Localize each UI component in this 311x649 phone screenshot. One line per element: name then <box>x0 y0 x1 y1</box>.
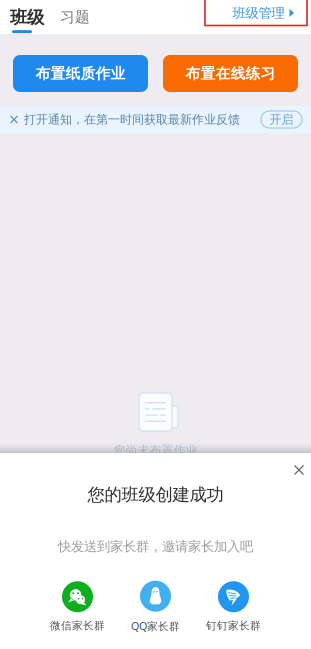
staticText: 打开通知，在第一时间获取最新作业反馈 <box>24 112 240 127</box>
staticText: 钉钉家长群 <box>206 619 261 632</box>
staticText: 班级管理 <box>232 5 284 21</box>
staticText: 快发送到家长群，邀请家长加入吧 <box>58 538 253 555</box>
button[interactable]: 开启 <box>261 111 302 128</box>
staticText: 微信家长群 <box>50 619 105 632</box>
button[interactable]: 班级 <box>0 0 44 34</box>
button[interactable]: 班级管理 <box>204 0 311 34</box>
button[interactable]: 布置在线练习 <box>163 55 298 92</box>
staticText: 您的班级创建成功 <box>87 484 223 505</box>
button[interactable]: 习题 <box>44 0 90 34</box>
button[interactable]: 钉钉家长群 <box>194 581 272 632</box>
staticText: 布置在线练习 <box>185 64 275 82</box>
button[interactable]: 布置纸质作业 <box>13 55 148 92</box>
button[interactable]: 微信家长群 <box>38 581 116 632</box>
staticText: 您尚未布置作业 <box>113 443 197 458</box>
staticText: QQ家长群 <box>131 619 180 633</box>
button[interactable]: Dismiss notification <box>4 106 24 132</box>
staticText: 开启 <box>269 112 293 127</box>
staticText: 习题 <box>60 8 90 26</box>
staticText: 布置纸质作业 <box>35 64 125 82</box>
staticText: 班级 <box>10 7 44 28</box>
button[interactable]: Close <box>287 460 311 480</box>
button[interactable]: QQ家长群 <box>116 581 194 633</box>
